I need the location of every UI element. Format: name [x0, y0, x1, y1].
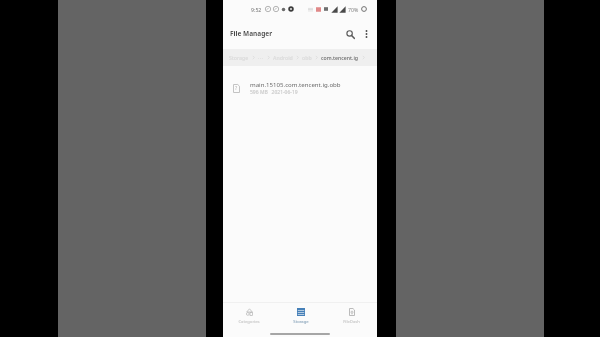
button[interactable]: Search: [343, 24, 358, 44]
staticText: File Manager: [230, 29, 273, 38]
staticText: ⋯: [258, 55, 264, 61]
staticText: com.tencent.ig: [321, 54, 359, 61]
staticText: Android: [273, 54, 293, 61]
button[interactable]: More options: [361, 24, 372, 44]
staticText: FileDash: [343, 319, 360, 325]
button[interactable]: Storage: [275, 305, 326, 328]
staticText: 9:52: [251, 6, 262, 13]
staticText: main.15105.com.tencent.ig.obb: [250, 80, 341, 88]
staticText: ?: [235, 85, 238, 92]
button[interactable]: FileDash: [326, 305, 377, 328]
staticText: Categories: [238, 319, 260, 325]
button[interactable]: Storage: [228, 54, 250, 61]
button[interactable]: obb: [301, 54, 313, 61]
staticText: Storage: [229, 54, 249, 61]
staticText: obb: [302, 54, 312, 61]
button[interactable]: com.tencent.ig: [320, 54, 360, 61]
staticText: Storage: [293, 319, 309, 325]
button[interactable]: ?: [223, 75, 377, 101]
staticText: 596 MB 2021-06-19: [250, 89, 298, 96]
staticText: 70%: [348, 6, 359, 13]
button[interactable]: Categories: [223, 305, 275, 328]
button[interactable]: Android: [272, 54, 294, 61]
